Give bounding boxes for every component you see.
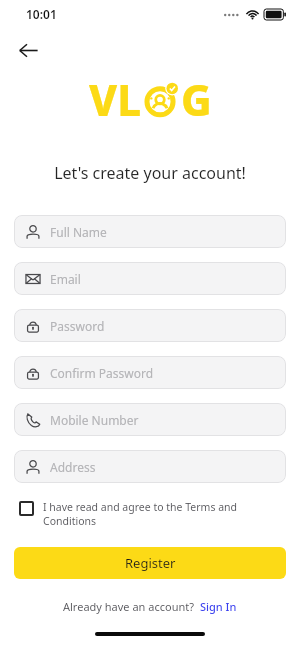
staticText: Address: [50, 459, 96, 475]
staticText: Confirm Password: [50, 365, 154, 381]
button[interactable]: Register: [14, 547, 286, 579]
button[interactable]: Confirm Password: [14, 356, 286, 389]
staticText: Register: [125, 554, 176, 572]
staticText: VL: [89, 71, 142, 128]
button[interactable]: Password: [14, 309, 286, 342]
button[interactable]: Mobile Number: [14, 403, 286, 436]
staticText: Sign In: [200, 599, 237, 614]
button[interactable]: Full Name: [14, 215, 286, 248]
button[interactable]: Sign In: [200, 599, 237, 614]
staticText: I have read and agree to the Terms and C…: [43, 500, 286, 528]
staticText: G: [181, 71, 212, 128]
button[interactable]: Back: [11, 33, 45, 67]
staticText: Full Name: [50, 224, 107, 240]
staticText: Email: [50, 271, 81, 287]
button[interactable]: I have read and agree to the Terms and C…: [14, 500, 286, 528]
button[interactable]: Email: [14, 262, 286, 295]
staticText: Password: [50, 318, 105, 334]
staticText: Already have an account?: [63, 599, 194, 614]
button[interactable]: Address: [14, 450, 286, 483]
staticText: Mobile Number: [50, 412, 139, 428]
staticText: Let's create your account!: [0, 162, 300, 184]
staticText: 10:01: [26, 6, 57, 22]
